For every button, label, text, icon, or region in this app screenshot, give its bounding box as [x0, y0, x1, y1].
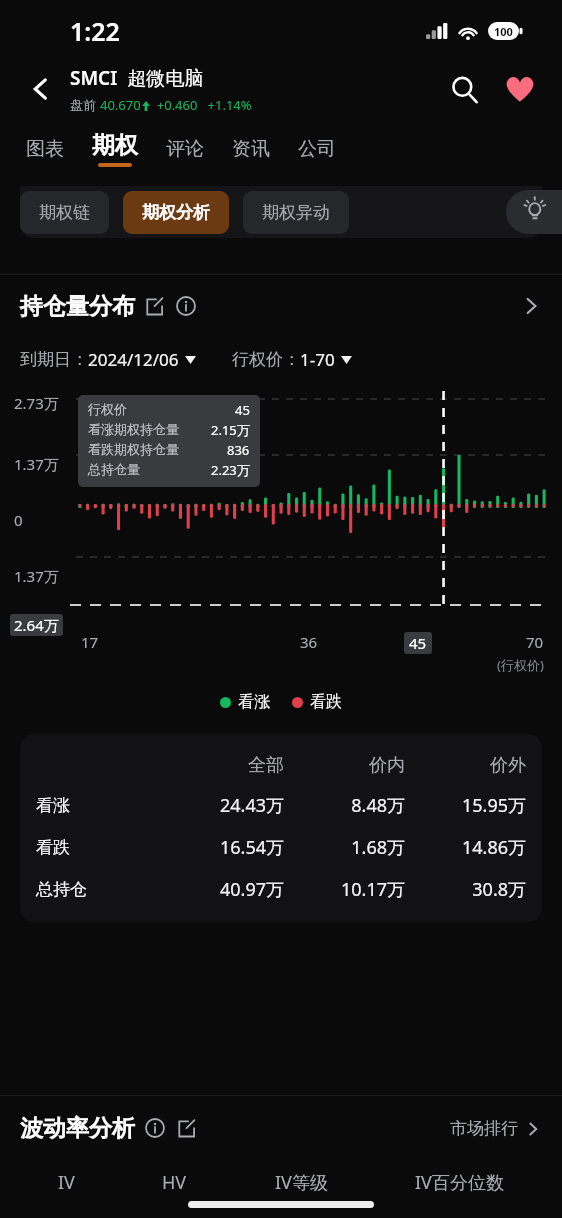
staticText: SMCI 超微电脑 — [70, 65, 204, 91]
staticText: 资讯 — [232, 137, 270, 161]
staticText: 2024/12/06 — [88, 348, 179, 371]
button[interactable]: Search — [440, 65, 488, 113]
button[interactable]: 期权异动 — [243, 191, 349, 234]
staticText: 15.95万 — [405, 793, 526, 818]
staticText: HV — [162, 1170, 187, 1195]
staticText: IV — [58, 1170, 75, 1195]
staticText: 期权链 — [39, 202, 90, 223]
staticText: IV百分位数 — [415, 1170, 504, 1195]
button[interactable]: 到期日： — [20, 348, 196, 371]
button[interactable]: IV等级 — [267, 1164, 336, 1201]
staticText: +0.460 +1.14% — [150, 96, 252, 114]
staticText: 价内 — [284, 754, 405, 777]
staticText: 盘前 — [70, 96, 100, 114]
button[interactable]: 公司 — [284, 131, 350, 167]
staticText: 全部 — [144, 754, 284, 777]
button[interactable]: 评论 — [152, 131, 218, 167]
staticText: 看跌 — [36, 837, 144, 858]
button[interactable]: Favorite — [496, 65, 544, 113]
staticText: 45 — [409, 633, 427, 653]
button[interactable]: 市场排行 — [450, 1118, 542, 1139]
button[interactable]: IV百分位数 — [407, 1164, 512, 1201]
button[interactable]: 图表 — [12, 131, 78, 167]
button[interactable]: Tips — [506, 190, 562, 234]
staticText: 40.670 — [100, 96, 141, 114]
staticText: 看涨 — [238, 692, 270, 712]
staticText: 36 — [300, 632, 318, 652]
staticText: 2.73万 — [14, 393, 59, 413]
staticText: 2.64万 — [14, 615, 59, 635]
staticText: 市场排行 — [450, 1118, 518, 1139]
button[interactable]: 资讯 — [218, 131, 284, 167]
staticText: 看涨期权持仓量 — [88, 421, 179, 437]
staticText: 2.23万 — [211, 461, 250, 479]
staticText: IV等级 — [275, 1170, 328, 1195]
button[interactable]: 期权分析 — [123, 191, 229, 234]
staticText: 看涨 — [36, 795, 144, 816]
staticText: 8.48万 — [284, 793, 405, 818]
button[interactable]: IV — [50, 1164, 83, 1201]
staticText: 1.68万 — [284, 835, 405, 860]
staticText: 总持仓 — [36, 879, 144, 900]
button[interactable]: 期权 — [78, 125, 152, 173]
staticText: (行权价) — [497, 656, 544, 674]
staticText: 图表 — [26, 137, 64, 161]
staticText: 40.97万 — [144, 877, 284, 902]
staticText: 16.54万 — [144, 835, 284, 860]
staticText: 行权价： — [232, 349, 300, 370]
staticText: 14.86万 — [405, 835, 526, 860]
staticText: 价外 — [405, 754, 526, 777]
staticText: 24.43万 — [144, 793, 284, 818]
button[interactable]: HV — [154, 1164, 195, 1201]
staticText: 看跌期权持仓量 — [88, 441, 179, 457]
button[interactable]: Back — [18, 66, 64, 112]
staticText: 1-70 — [300, 348, 335, 371]
staticText: 总持仓量 — [88, 461, 140, 477]
staticText: 70 — [526, 632, 544, 652]
staticText: 持仓量分布 — [20, 292, 135, 321]
staticText: 行权价 — [88, 401, 127, 417]
button[interactable]: 行权价： — [232, 348, 352, 371]
staticText: 期权异动 — [262, 202, 330, 223]
staticText: 100 — [494, 24, 513, 39]
staticText: 期权 — [92, 131, 138, 160]
staticText: 1.37万 — [14, 566, 59, 586]
staticText: 2.15万 — [211, 421, 250, 439]
button[interactable]: 持仓量分布 — [20, 275, 542, 337]
staticText: 17 — [81, 632, 99, 652]
staticText: 45 — [235, 401, 250, 419]
staticText: 1.37万 — [14, 454, 59, 474]
staticText: 到期日： — [20, 349, 88, 370]
staticText: 0 — [14, 510, 23, 530]
staticText: 30.8万 — [405, 877, 526, 902]
staticText: 看跌 — [310, 692, 342, 712]
button[interactable]: 期权链 — [20, 191, 109, 234]
staticText: 公司 — [298, 137, 336, 161]
staticText: 10.17万 — [284, 877, 405, 902]
staticText: 评论 — [166, 137, 204, 161]
staticText: 1:22 — [70, 14, 120, 48]
staticText: 期权分析 — [142, 202, 210, 223]
staticText: 836 — [227, 441, 250, 459]
staticText: 波动率分析 — [20, 1114, 135, 1143]
